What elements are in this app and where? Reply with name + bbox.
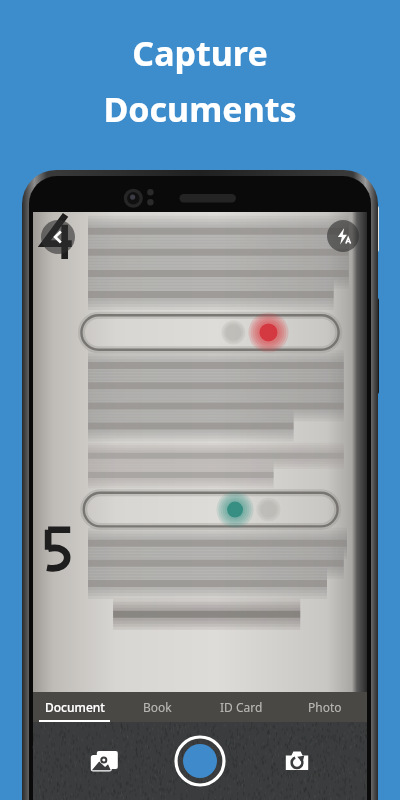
button[interactable]: Capture — [174, 735, 226, 787]
staticText: Document — [45, 699, 105, 715]
staticText: ID Card — [220, 699, 263, 715]
staticText: Book — [143, 699, 172, 715]
button[interactable]: Back — [41, 220, 75, 254]
staticText: Photo — [308, 699, 342, 715]
staticText: Capture — [132, 30, 268, 76]
button[interactable]: Gallery — [81, 738, 127, 784]
button[interactable]: Switch camera — [274, 738, 320, 784]
button[interactable]: Book — [116, 692, 199, 722]
button[interactable]: ID Card — [199, 692, 283, 722]
button[interactable]: Document — [33, 692, 116, 722]
button[interactable]: Photo — [283, 692, 367, 722]
staticText: Documents — [103, 86, 297, 132]
button[interactable]: Flash auto — [327, 220, 359, 252]
